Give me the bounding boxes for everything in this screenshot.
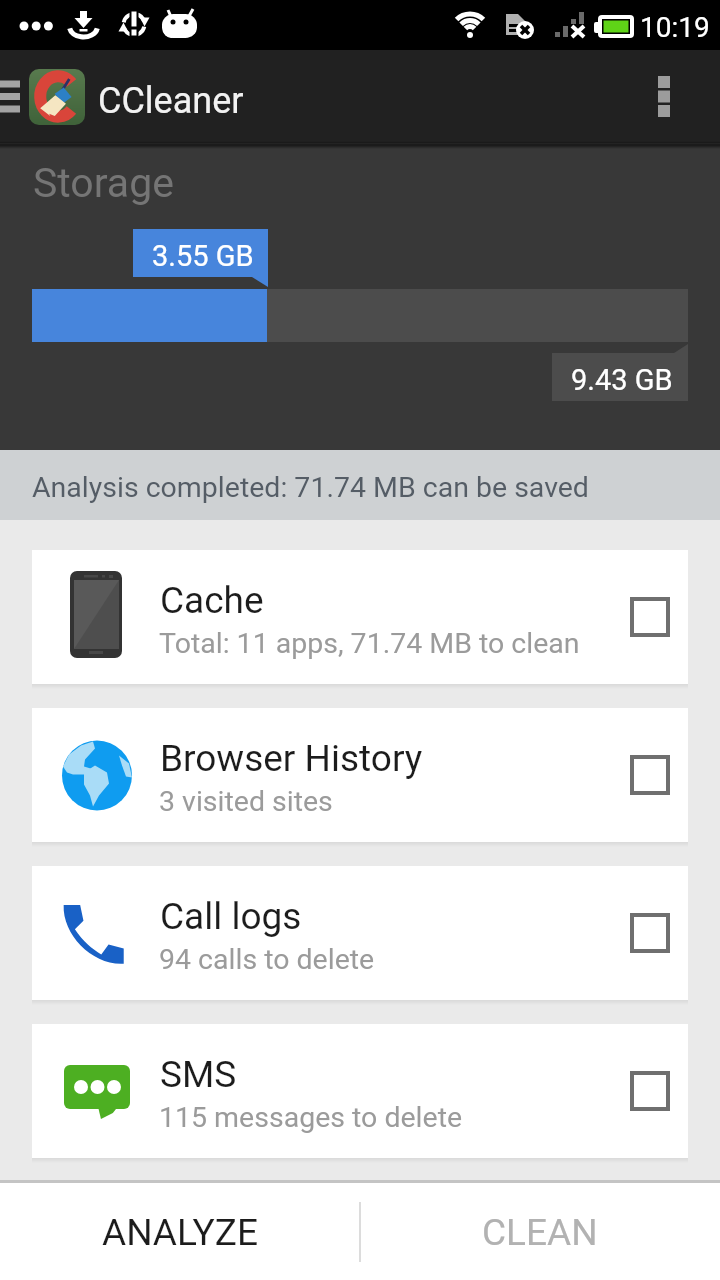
staticText: Total: 11 apps, 71.74 MB to clean [159, 627, 580, 660]
button[interactable]: Open navigation drawer [0, 50, 24, 143]
button[interactable]: CLEAN [360, 1183, 720, 1280]
staticText: Analysis completed: 71.74 MB can be save… [32, 471, 589, 504]
button[interactable]: Call logs [32, 866, 688, 1000]
staticText: 3 visited sites [159, 785, 333, 818]
staticText: Call logs [160, 895, 302, 938]
staticText: SMS [160, 1053, 237, 1096]
staticText: CLEAN [482, 1211, 598, 1254]
staticText: 115 messages to delete [159, 1101, 463, 1134]
staticText: Browser History [160, 737, 423, 780]
button[interactable]: More options [632, 50, 696, 143]
button[interactable]: Browser History [32, 708, 688, 842]
staticText: CCleaner [98, 80, 244, 122]
staticText: 3.55 GB [152, 239, 254, 273]
staticText: 94 calls to delete [159, 943, 375, 976]
staticText: Cache [160, 579, 264, 622]
staticText: 9.43 GB [571, 363, 673, 397]
staticText: Storage [33, 159, 174, 207]
button[interactable]: SMS [32, 1024, 688, 1158]
staticText: ANALYZE [102, 1211, 259, 1254]
button[interactable]: Cache [32, 550, 688, 684]
staticText: 10:19 [640, 11, 710, 44]
button[interactable]: ANALYZE [0, 1183, 360, 1280]
